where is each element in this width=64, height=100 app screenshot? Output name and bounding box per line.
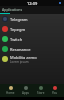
button[interactable]: Telegram [0,14,64,24]
staticText: Twitch [10,37,23,42]
staticText: Lorem ipsum [10,60,29,64]
staticText: 12:09 [27,1,38,6]
staticText: Applications [2,7,23,12]
button[interactable]: Store [36,86,46,95]
button[interactable]: Apps [21,86,31,95]
button[interactable]: Mobilita zemo [0,54,64,64]
staticText: Apps [22,91,30,95]
staticText: Mobilita zemo [10,55,37,60]
button[interactable]: Home [5,86,16,95]
button[interactable]: You [51,86,59,95]
staticText: Store [37,91,45,95]
staticText: Telegram [10,17,28,22]
button[interactable]: Tepegm [0,24,64,34]
staticText: You [52,91,58,95]
staticText: Tepegm [10,27,26,32]
button[interactable]: Resonance [0,44,64,54]
staticText: Home [6,91,15,95]
button[interactable]: Twitch [0,34,64,44]
staticText: Resonance [10,47,31,52]
